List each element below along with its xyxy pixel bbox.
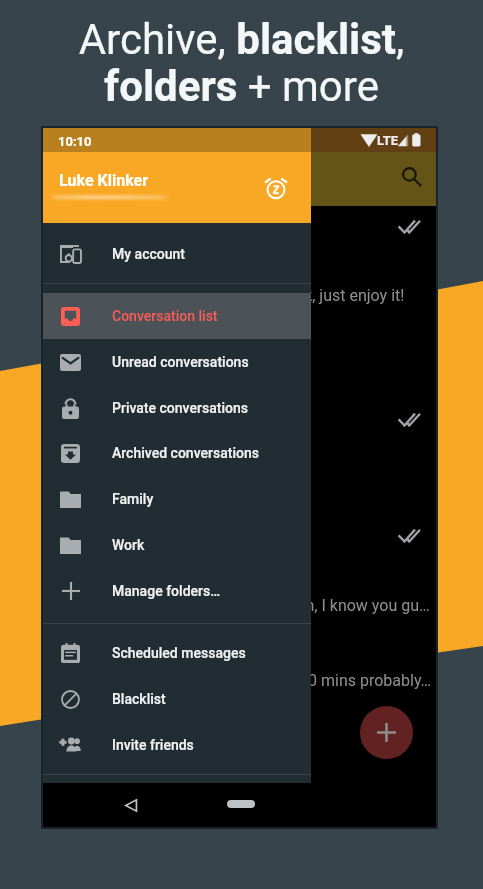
staticText: Manage folders… — [112, 583, 221, 599]
staticText: Unread conversations — [112, 354, 249, 370]
button[interactable]: Manage folders… — [43, 568, 311, 614]
button[interactable]: Snooze notifications — [258, 170, 294, 206]
staticText: 10:10 — [58, 134, 92, 149]
staticText: Work — [112, 537, 145, 553]
button[interactable]: Family — [43, 476, 311, 522]
button[interactable]: My account — [43, 231, 311, 277]
button[interactable]: Work — [43, 522, 311, 568]
staticText: Conversation list — [112, 308, 218, 324]
button[interactable]: Invite friends — [43, 722, 311, 768]
button[interactable]: Search — [392, 157, 430, 195]
staticText: Invite friends — [112, 737, 194, 753]
staticText: Luke Klinker — [59, 171, 149, 190]
staticText: 20 mins probably… — [299, 671, 432, 690]
staticText: LTE — [377, 133, 399, 148]
button[interactable]: Conversation list — [43, 293, 311, 339]
button[interactable]: Unread conversations — [43, 339, 311, 385]
button[interactable]: Home — [225, 795, 257, 813]
staticText: Family — [112, 491, 154, 507]
staticText: Private conversations — [112, 400, 248, 416]
button[interactable]: Blacklist — [43, 676, 311, 722]
staticText: folders + more — [0, 62, 483, 111]
button[interactable]: New conversation — [360, 706, 413, 759]
staticText: Archive, blacklist, — [0, 15, 483, 64]
staticText: ok, just enjoy it! — [295, 286, 405, 305]
button[interactable]: Back — [117, 791, 145, 819]
button[interactable]: Private conversations — [43, 385, 311, 431]
staticText: Blacklist — [112, 691, 166, 707]
staticText: My account — [112, 246, 186, 262]
staticText: Scheduled messages — [112, 645, 246, 661]
button[interactable]: Scheduled messages — [43, 630, 311, 676]
staticText: nah, I know you gu… — [288, 596, 430, 615]
staticText: Archived conversations — [112, 445, 259, 461]
button[interactable]: Archived conversations — [43, 430, 311, 476]
